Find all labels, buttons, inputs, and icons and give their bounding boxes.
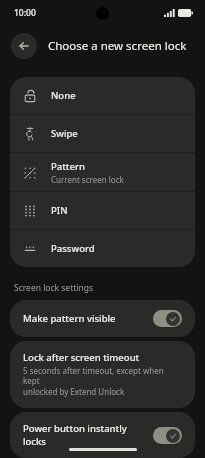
staticText: Swipe bbox=[51, 127, 78, 140]
staticText: None bbox=[51, 89, 76, 102]
staticText: Make pattern visible bbox=[23, 312, 116, 325]
staticText: Power button instantly locks bbox=[23, 422, 145, 448]
staticText: Screen lock settings bbox=[14, 282, 94, 294]
staticText: Choose a new screen lock bbox=[48, 38, 187, 54]
staticText: 10:00 bbox=[14, 7, 36, 19]
button[interactable]: Back bbox=[11, 33, 37, 59]
button[interactable]: Pattern bbox=[10, 153, 195, 191]
staticText: Pattern bbox=[51, 160, 85, 173]
button[interactable]: Swipe bbox=[10, 115, 195, 152]
staticText: Current screen lock bbox=[51, 174, 124, 185]
button[interactable]: Password bbox=[10, 230, 195, 267]
staticText: Lock after screen timeout bbox=[23, 351, 140, 364]
staticText: PIN bbox=[51, 204, 68, 217]
button[interactable]: PIN bbox=[10, 192, 195, 229]
button[interactable]: Make pattern visible bbox=[10, 300, 195, 337]
button[interactable]: Toggle bbox=[153, 427, 182, 444]
staticText: 5 seconds after timeout, except when kep… bbox=[23, 365, 182, 398]
staticText: Password bbox=[51, 242, 95, 255]
button[interactable]: Toggle bbox=[153, 310, 182, 327]
button[interactable]: Lock after screen timeout bbox=[10, 341, 195, 408]
button[interactable]: Power button instantly locks bbox=[10, 412, 195, 458]
button[interactable]: None bbox=[10, 77, 195, 114]
